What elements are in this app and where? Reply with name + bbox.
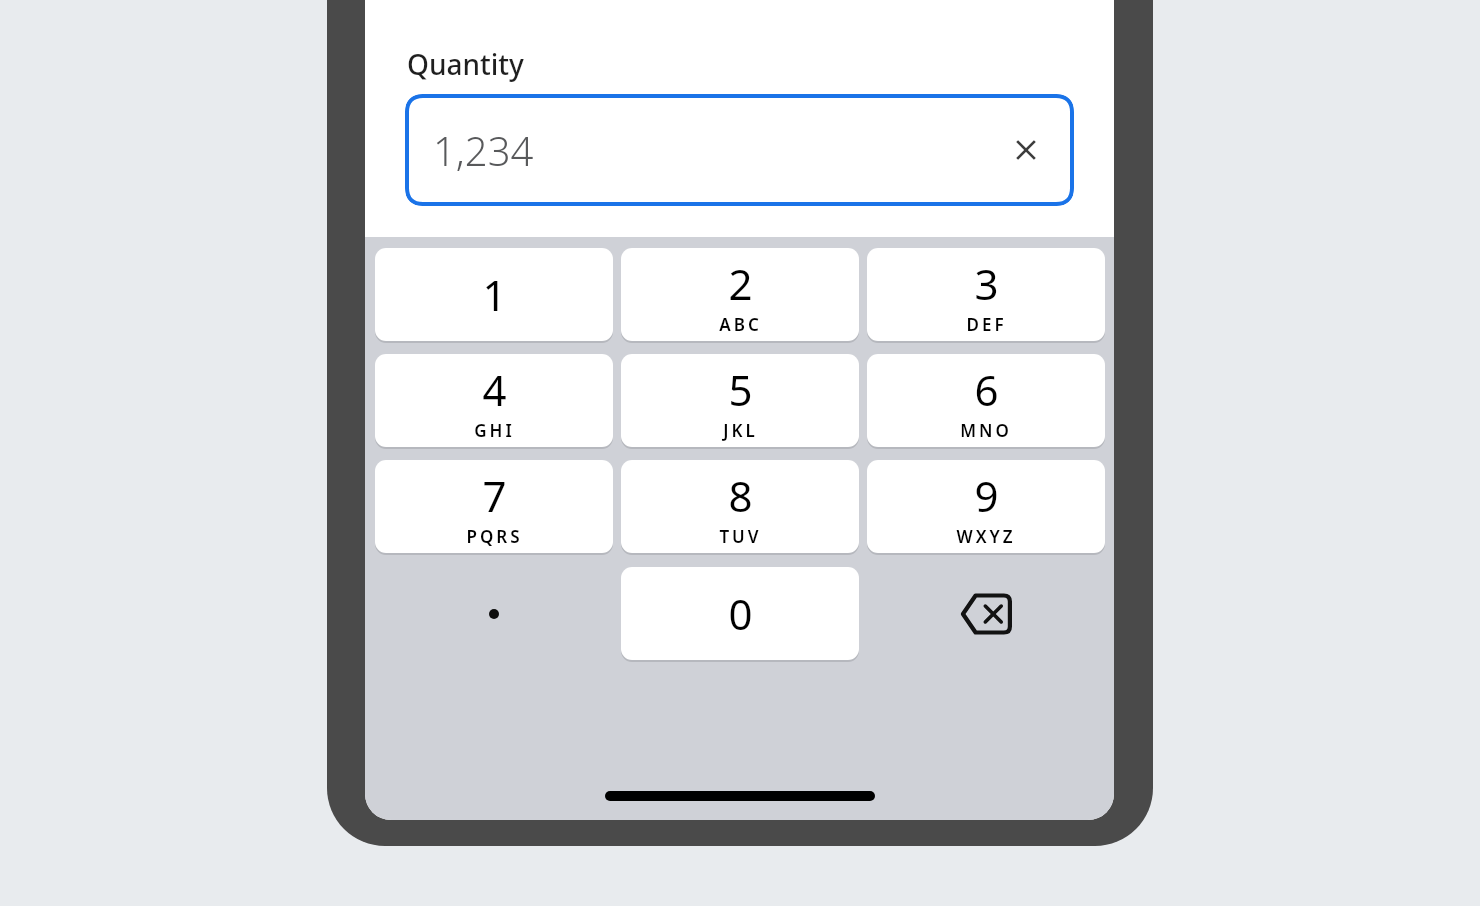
button[interactable]: 2 bbox=[621, 248, 859, 341]
button[interactable]: 0 bbox=[621, 567, 859, 660]
button[interactable]: Clear text bbox=[996, 120, 1056, 180]
staticText: 2 bbox=[728, 255, 753, 312]
button[interactable]: 1 bbox=[375, 248, 613, 341]
button[interactable]: Decimal point bbox=[375, 567, 613, 660]
button[interactable]: 9 bbox=[867, 460, 1105, 553]
staticText: 0 bbox=[728, 585, 753, 642]
button[interactable]: 6 bbox=[867, 354, 1105, 447]
staticText: DEF bbox=[966, 313, 1007, 336]
staticText: TUV bbox=[719, 525, 762, 548]
staticText: PQRS bbox=[466, 525, 523, 548]
staticText: 3 bbox=[974, 255, 999, 312]
staticText: Quantity bbox=[407, 45, 524, 83]
staticText: JKL bbox=[723, 419, 758, 442]
staticText: 1,234 bbox=[433, 123, 534, 177]
button[interactable]: 7 bbox=[375, 460, 613, 553]
staticText: 6 bbox=[974, 361, 999, 418]
staticText: 9 bbox=[974, 467, 999, 524]
button[interactable]: 4 bbox=[375, 354, 613, 447]
staticText: 4 bbox=[482, 361, 507, 418]
staticText: ABC bbox=[719, 313, 762, 336]
staticText: 8 bbox=[728, 467, 753, 524]
staticText: 7 bbox=[482, 467, 507, 524]
button[interactable]: 3 bbox=[867, 248, 1105, 341]
button[interactable]: 5 bbox=[621, 354, 859, 447]
button[interactable]: Backspace bbox=[867, 567, 1105, 660]
staticText: GHI bbox=[474, 419, 515, 442]
staticText: MNO bbox=[960, 419, 1012, 442]
staticText: WXYZ bbox=[956, 525, 1016, 548]
button[interactable]: 8 bbox=[621, 460, 859, 553]
staticText: 5 bbox=[728, 361, 753, 418]
staticText: 1 bbox=[482, 266, 507, 323]
button[interactable]: 1,234 bbox=[405, 94, 1074, 206]
